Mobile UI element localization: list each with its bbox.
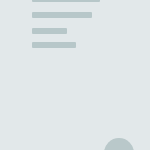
button[interactable]: Add: [104, 138, 134, 150]
